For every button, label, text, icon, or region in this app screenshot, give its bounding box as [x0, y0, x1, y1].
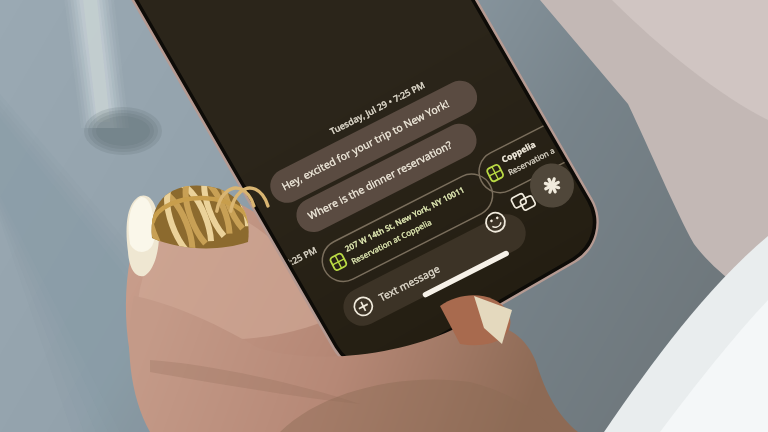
button[interactable]: Hey, excited for your trip to New York!: [300, 122, 450, 162]
button[interactable]: Attach image: [506, 190, 534, 218]
button[interactable]: 207 W 14th St, New York, NY 10011 — Rese…: [330, 208, 486, 250]
button[interactable]: Where is the dinner reservation?: [316, 160, 458, 198]
button[interactable]: Text message: [352, 250, 522, 292]
button[interactable]: Insert emoji: [482, 210, 510, 238]
button[interactable]: Smart reply suggestions: [530, 164, 574, 208]
button[interactable]: Coppelia Reservation: [476, 132, 604, 172]
